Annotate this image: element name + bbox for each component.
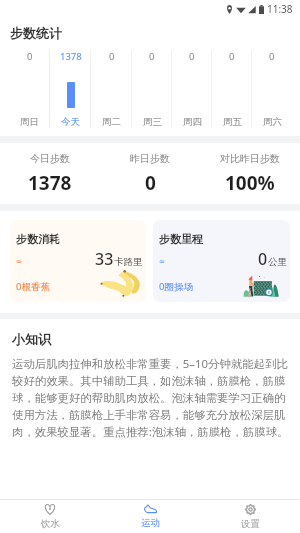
staticText: 今日步数 [30,152,70,165]
staticText: 11:38 [267,2,293,16]
staticText: 0 [145,170,156,196]
staticText: 0 [258,248,268,270]
staticText: 卡路里 [114,256,143,268]
staticText: 周二 [102,116,121,128]
button[interactable]: 饮水 [0,500,100,533]
staticText: 0 [229,50,235,63]
staticText: 0 [189,50,195,63]
staticText: 对比昨日步数 [220,152,280,165]
other: 饮水 [44,504,56,515]
staticText: 周三 [143,116,162,128]
staticText: 周四 [183,116,202,128]
staticText: ≈ [16,258,22,266]
staticText: 运动 [141,517,160,529]
button[interactable]: 对比昨日步数 [200,143,300,204]
button[interactable]: 0 [9,50,50,128]
staticText: 公里 [268,256,287,268]
button[interactable]: 设置 [200,500,300,533]
staticText: 0 [27,50,33,63]
staticText: 周五 [223,116,242,128]
staticText: 小知识 [12,331,51,347]
other: 运动 [144,504,157,514]
button[interactable]: 昨日步数 [100,143,200,204]
button[interactable]: 0 [212,50,252,128]
staticText: 1378 [28,170,72,196]
staticText: 0 [149,50,155,63]
staticText: 昨日步数 [130,152,170,165]
button[interactable]: 运动 [100,500,200,533]
staticText: 33 [95,248,114,270]
button[interactable]: 0 [132,50,172,128]
staticText: 0圈操场 [159,280,193,293]
button[interactable]: 步数里程 [153,220,290,302]
staticText: 步数消耗 [16,232,60,246]
staticText: 今天 [61,116,80,128]
staticText: 1378 [60,50,82,63]
staticText: 周日 [20,116,39,128]
other: 设置 [245,504,256,515]
staticText: 运动后肌肉拉伸和放松非常重要，5–10分钟就能起到比较好的效果。其中辅助工具，如… [12,356,291,440]
button[interactable]: 1378 [50,50,91,128]
button[interactable]: 今日步数 [0,143,100,204]
button[interactable]: 0 [252,50,292,128]
button[interactable]: 0 [91,50,132,128]
staticText: 步数里程 [159,232,203,246]
staticText: 步数统计 [10,25,62,41]
button[interactable]: 步数消耗 [10,220,146,302]
staticText: 设置 [241,518,260,530]
staticText: 0根香蕉 [16,280,50,293]
staticText: ≈ [159,258,165,266]
staticText: 0 [269,50,275,63]
staticText: 周六 [263,116,282,128]
staticText: 100% [225,170,275,196]
staticText: 0 [109,50,115,63]
staticText: 饮水 [41,518,60,530]
button[interactable]: 0 [172,50,212,128]
